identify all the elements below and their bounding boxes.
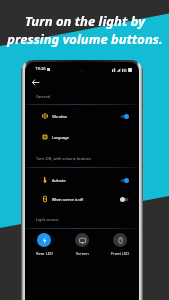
staticText: pressing volume buttons. bbox=[7, 30, 163, 48]
staticText: Vibration bbox=[52, 114, 68, 119]
button[interactable]: Screen bbox=[63, 233, 101, 256]
button[interactable]: When screen is off bbox=[25, 190, 139, 208]
staticText: Language bbox=[52, 135, 69, 140]
button[interactable]: Vibration bbox=[25, 107, 139, 125]
staticText: Light source bbox=[36, 217, 59, 222]
button[interactable]: Back bbox=[29, 76, 41, 88]
staticText: 19:26 bbox=[35, 66, 46, 72]
button[interactable]: Activate bbox=[25, 171, 139, 189]
staticText: Rear LED bbox=[36, 251, 53, 256]
staticText: Turn ON, with volume buttons bbox=[36, 156, 92, 161]
staticText: Front LED bbox=[111, 251, 130, 256]
button[interactable]: Rear LED bbox=[25, 233, 63, 256]
staticText: Activate bbox=[52, 178, 66, 183]
staticText: Turn on the light by bbox=[25, 12, 145, 30]
button[interactable]: Language bbox=[25, 128, 139, 146]
staticText: When screen is off bbox=[52, 197, 84, 202]
staticText: General bbox=[36, 94, 51, 99]
staticText: Screen bbox=[76, 251, 89, 256]
button[interactable]: Front LED bbox=[101, 233, 139, 256]
